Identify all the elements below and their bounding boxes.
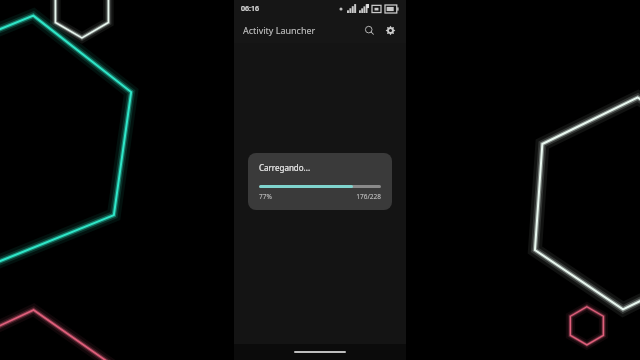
- staticText: 06:16: [241, 4, 259, 14]
- button[interactable]: Settings: [380, 20, 400, 40]
- button[interactable]: Carregando...: [248, 153, 392, 210]
- staticText: Carregando...: [259, 162, 311, 173]
- staticText: 77%: [259, 192, 272, 201]
- staticText: 176/228: [356, 192, 381, 201]
- button[interactable]: Search: [359, 20, 379, 40]
- staticText: Activity Launcher: [243, 24, 316, 36]
